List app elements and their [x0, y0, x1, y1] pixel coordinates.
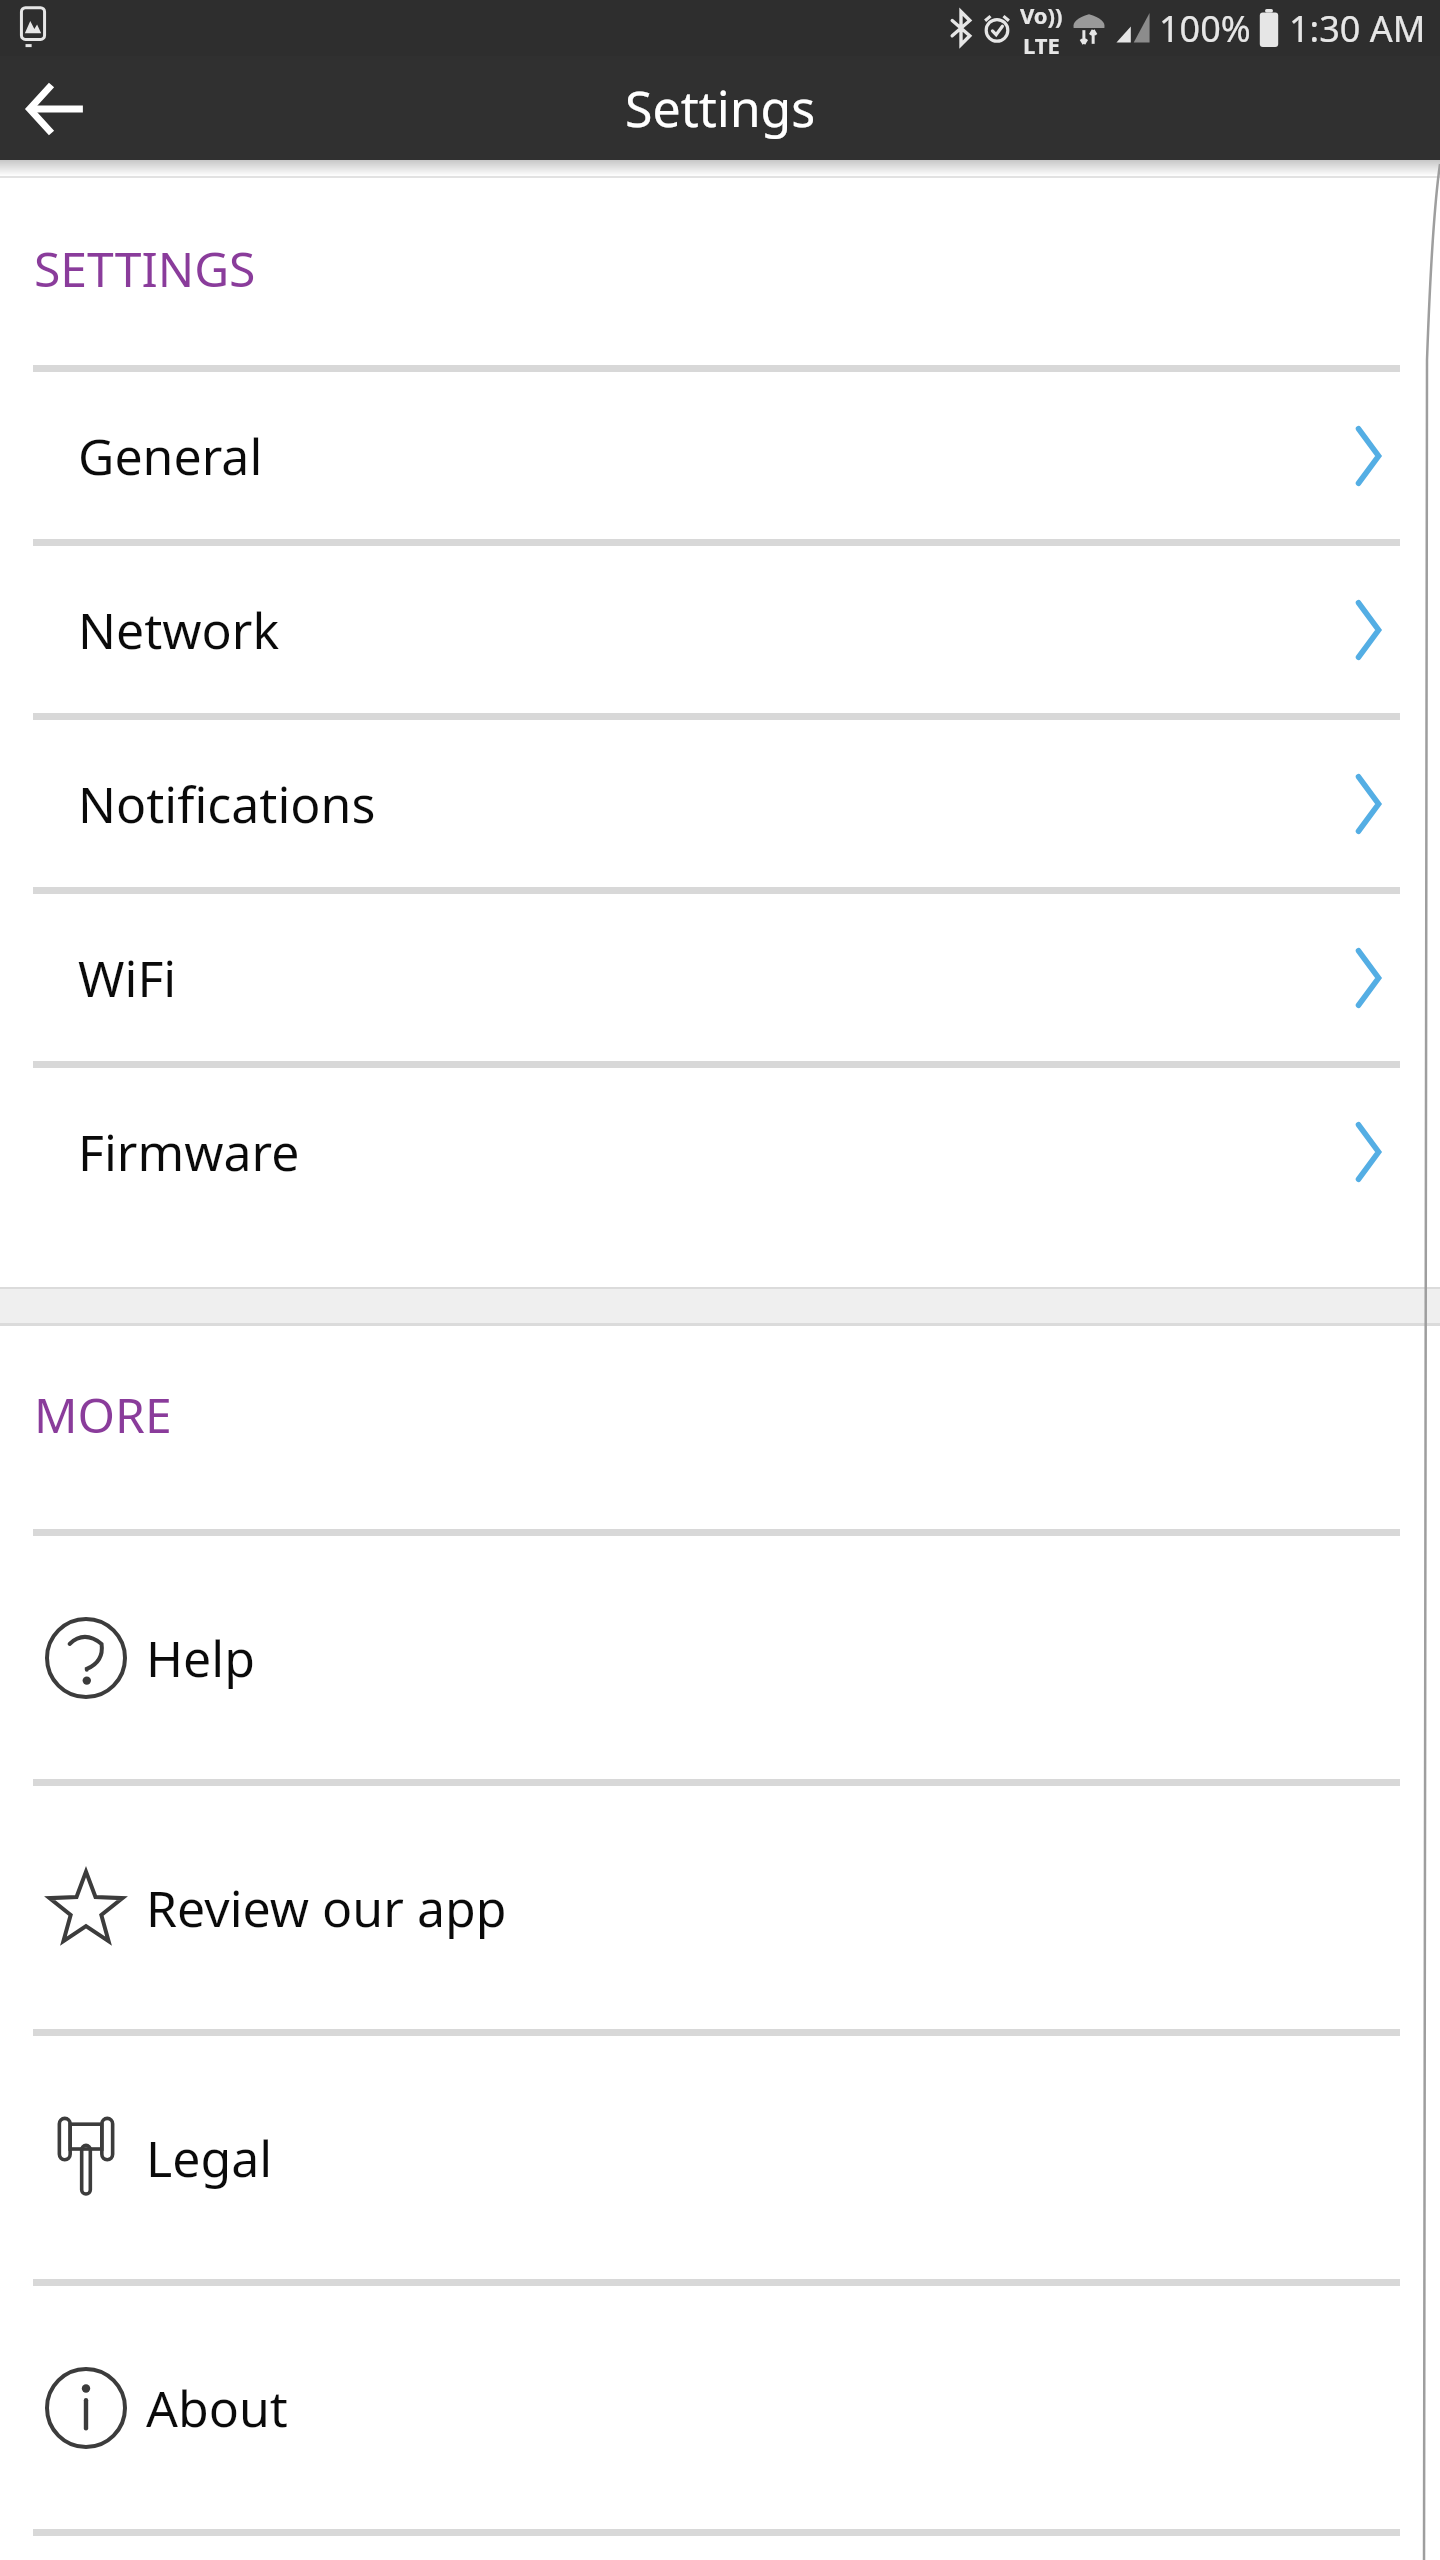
staticText: Legal [146, 2124, 273, 2192]
staticText: Notifications [78, 770, 376, 838]
staticText: Network [78, 596, 280, 664]
button[interactable]: Firmware [0, 1068, 1440, 1235]
button[interactable]: Back [0, 56, 112, 160]
button[interactable]: About [0, 2286, 1440, 2529]
staticText: WiFi [78, 944, 177, 1012]
staticText: Firmware [78, 1118, 300, 1186]
staticText: Help [146, 1624, 255, 1692]
staticText: 1:30 AM [1289, 4, 1426, 53]
button[interactable]: Review our app [0, 1786, 1440, 2029]
staticText: Review our app [146, 1874, 507, 1942]
button[interactable]: WiFi [0, 894, 1440, 1061]
staticText: MORE [34, 1382, 172, 1447]
button[interactable]: Notifications [0, 720, 1440, 887]
button[interactable]: Help [0, 1536, 1440, 1779]
staticText: SETTINGS [34, 236, 256, 301]
staticText: 100% [1159, 4, 1251, 53]
button[interactable]: Network [0, 546, 1440, 713]
button[interactable]: Legal [0, 2036, 1440, 2279]
staticText: About [146, 2374, 288, 2442]
staticText: Vo)) [1020, 0, 1063, 30]
staticText: General [78, 422, 263, 490]
staticText: Settings [625, 74, 816, 142]
button[interactable]: General [0, 372, 1440, 539]
staticText: LTE [1023, 30, 1060, 56]
